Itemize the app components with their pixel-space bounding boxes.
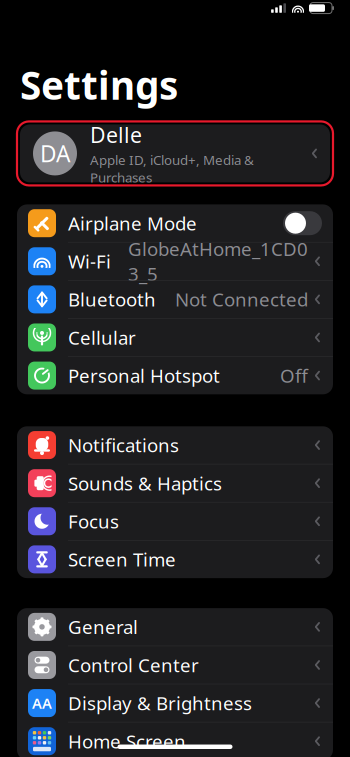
staticText: Sounds & Haptics (68, 471, 222, 496)
staticText: Cellular (68, 325, 136, 350)
button[interactable]: AA (17, 684, 333, 722)
staticText: Apple ID, iCloud+, Media & Purchases (90, 151, 254, 186)
button[interactable]: Airplane Mode (17, 204, 333, 242)
staticText: Screen Time (68, 547, 176, 572)
button[interactable]: Screen Time (17, 541, 333, 578)
staticText: Settings (20, 59, 178, 110)
staticText: Notifications (68, 433, 179, 457)
button[interactable]: Home Screen (17, 722, 333, 757)
staticText: Delle (90, 121, 142, 149)
staticText: Home Screen (68, 729, 186, 754)
staticText: Control Center (68, 653, 199, 677)
button[interactable]: DA (20, 124, 330, 182)
staticText: DA (40, 138, 70, 168)
staticText: Airplane Mode (68, 211, 197, 236)
button[interactable]: Bluetooth (17, 281, 333, 318)
button[interactable]: Control Center (17, 646, 333, 684)
staticText: General (68, 614, 138, 639)
staticText: Focus (68, 509, 119, 534)
staticText: Bluetooth (68, 287, 156, 312)
staticText: Display & Brightness (68, 691, 252, 715)
staticText: Off (280, 363, 308, 388)
staticText: Personal Hotspot (68, 363, 220, 388)
button[interactable]: Cellular (17, 319, 333, 356)
staticText: Not Connected (175, 287, 308, 312)
staticText: AA (32, 693, 52, 713)
staticText: Wi-Fi (68, 249, 111, 274)
button[interactable]: General (17, 608, 333, 646)
staticText: GlobeAtHome_1CD03_5 (128, 236, 308, 286)
button[interactable]: Personal Hotspot (17, 357, 333, 394)
button[interactable]: Notifications (17, 426, 333, 464)
button[interactable]: Focus (17, 502, 333, 540)
button[interactable]: Wi-Fi (17, 242, 333, 280)
button[interactable]: Sounds & Haptics (17, 464, 333, 502)
